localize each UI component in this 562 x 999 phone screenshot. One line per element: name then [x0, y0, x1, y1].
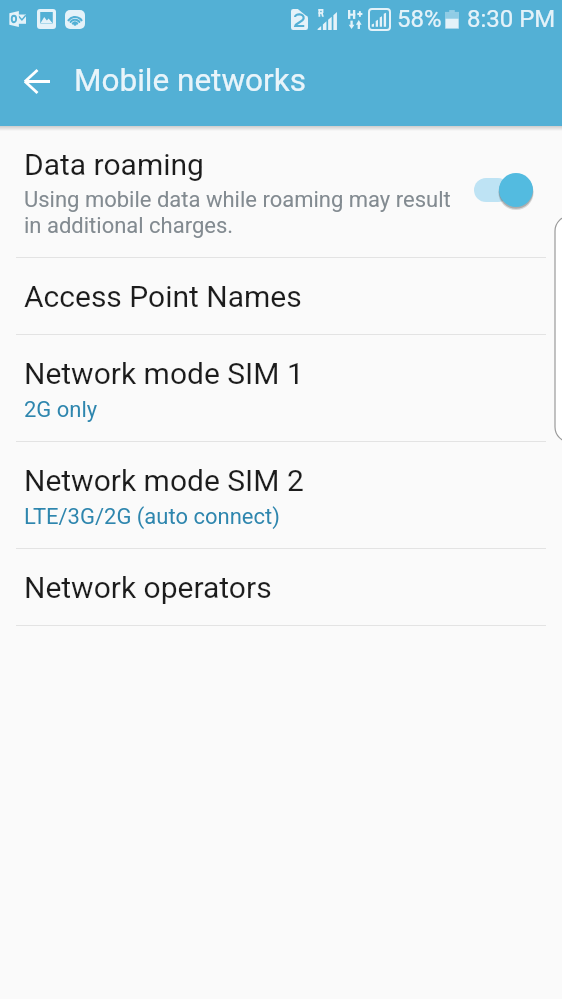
button[interactable]: Access Point Names — [0, 258, 562, 334]
staticText: Data roaming — [24, 147, 204, 182]
staticText: Network mode SIM 1 — [24, 356, 304, 391]
button[interactable]: Network operators — [0, 549, 562, 625]
staticText: Access Point Names — [24, 279, 302, 314]
button[interactable]: Network mode SIM 1 — [0, 335, 562, 441]
staticText: 8:30 PM — [467, 5, 556, 33]
button[interactable]: Network mode SIM 2 — [0, 442, 562, 548]
staticText: Network mode SIM 2 — [24, 463, 304, 498]
staticText: LTE/3G/2G (auto connect) — [24, 504, 280, 530]
staticText: Network operators — [24, 570, 272, 605]
button[interactable]: Navigate up — [11, 55, 63, 107]
button[interactable]: Data roaming toggle — [460, 126, 562, 257]
staticText: 2G only — [24, 397, 98, 423]
staticText: Using mobile data while roaming may resu… — [24, 187, 460, 238]
button[interactable]: Data roaming — [0, 126, 562, 257]
staticText: 58% — [397, 5, 442, 33]
staticText: Mobile networks — [74, 62, 306, 99]
